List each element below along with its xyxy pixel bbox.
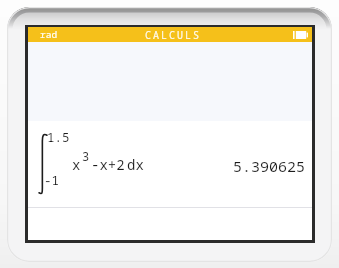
staticText: 5.390625 <box>233 156 306 176</box>
staticText: 1.5 <box>47 129 70 146</box>
button[interactable]: rad <box>28 27 312 42</box>
staticText: 3 <box>82 148 90 164</box>
button[interactable]: 1.5 <box>28 121 312 207</box>
staticText: x <box>72 155 81 174</box>
staticText: dx <box>127 155 144 174</box>
staticText: -x+2 <box>91 155 125 174</box>
staticText: -1 <box>44 172 60 189</box>
staticText: rad <box>40 28 58 41</box>
staticText: CALCULS <box>144 28 200 42</box>
